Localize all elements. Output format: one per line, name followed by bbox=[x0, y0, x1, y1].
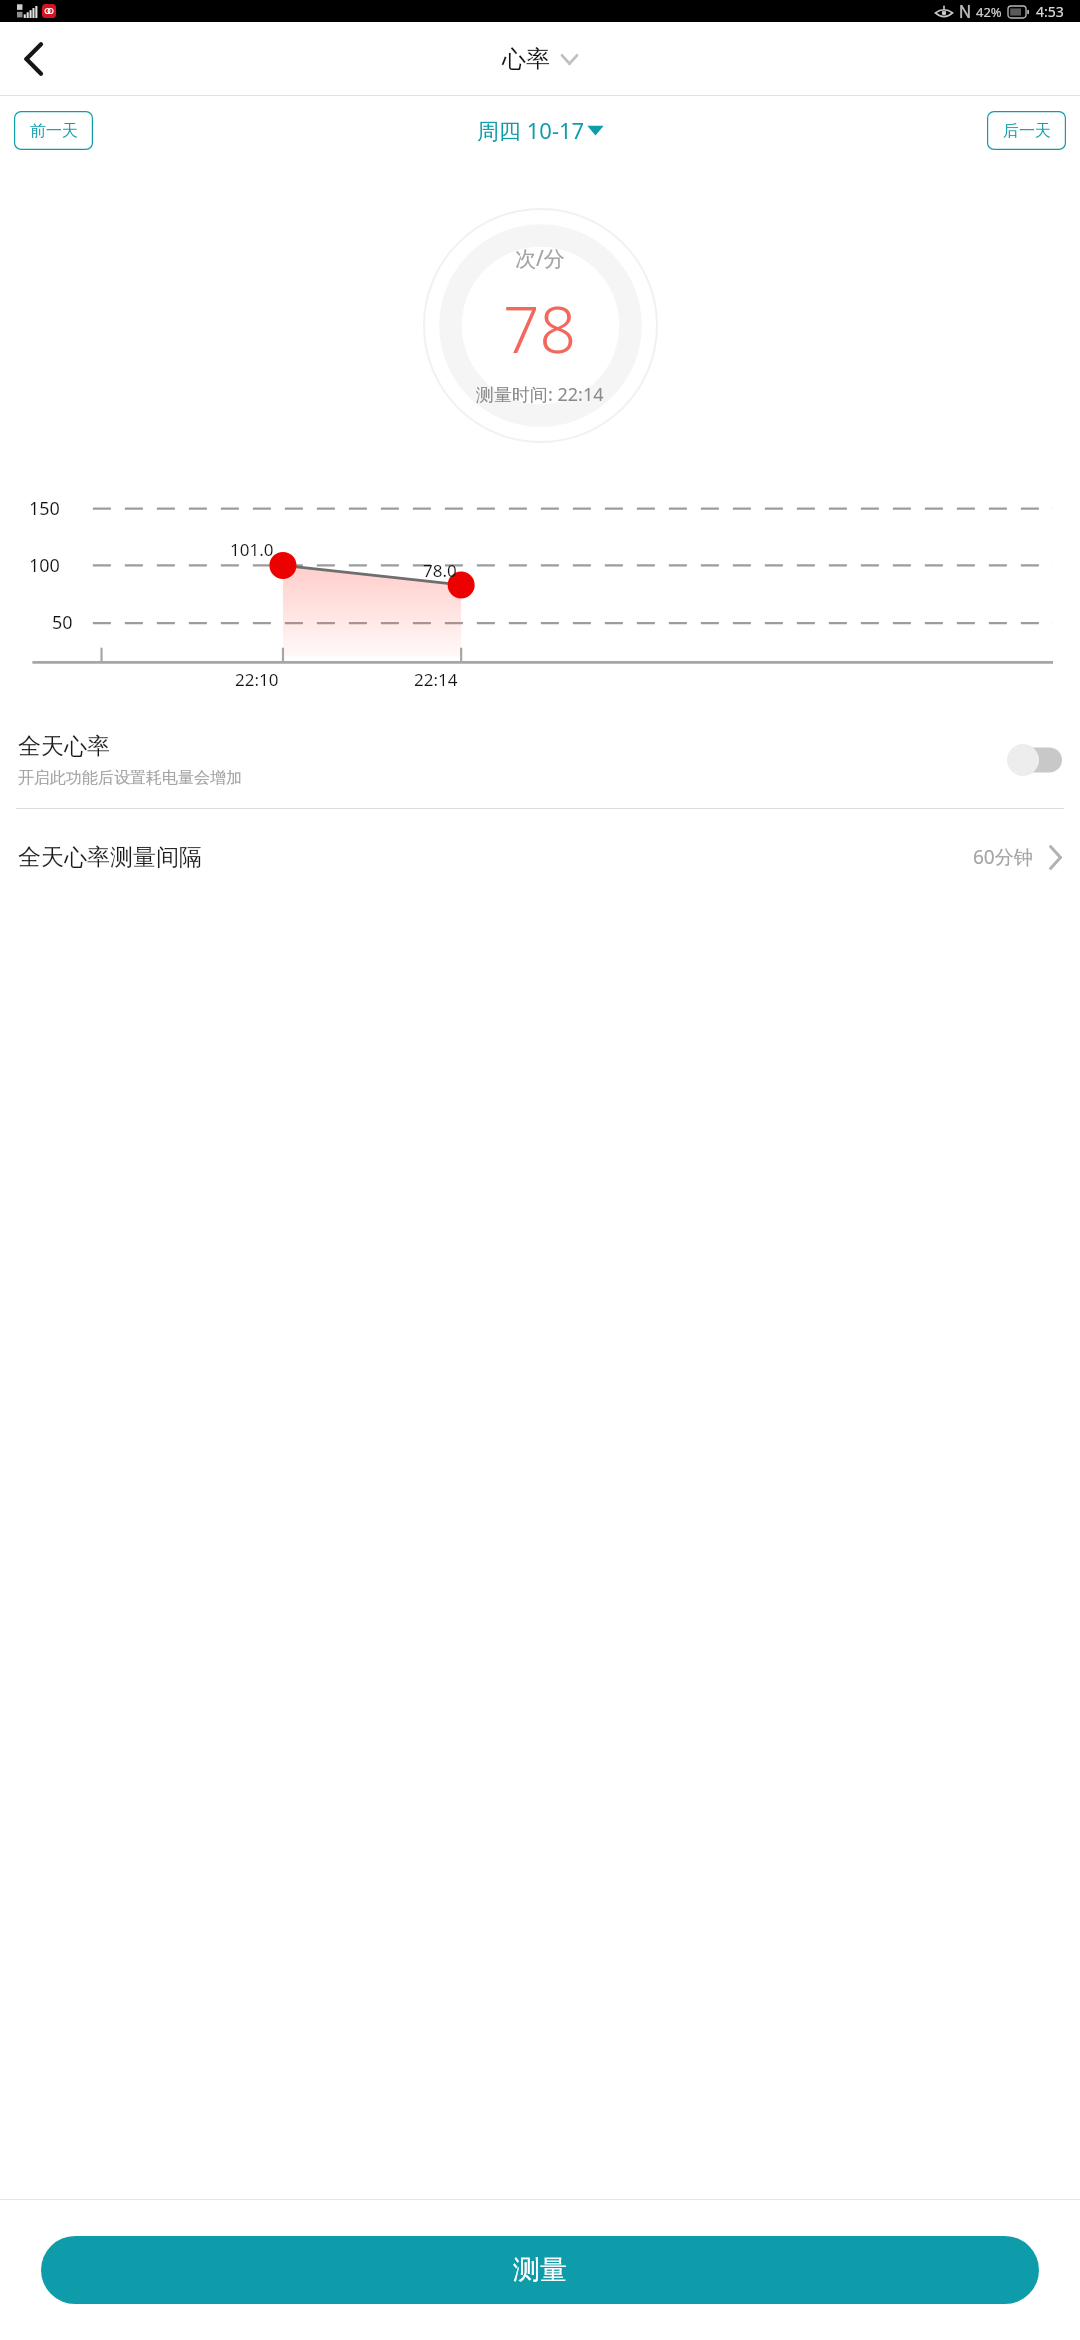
staticText: 22:10 bbox=[235, 668, 279, 691]
staticText: 60分钟 bbox=[973, 844, 1033, 870]
button[interactable]: 周四 10-17 bbox=[477, 115, 604, 145]
button[interactable]: 全天心率测量间隔 bbox=[0, 809, 1080, 905]
staticText: 心率 bbox=[502, 44, 550, 74]
staticText: 全天心率 bbox=[18, 732, 110, 761]
button[interactable]: 前一天 bbox=[14, 111, 93, 150]
staticText: 测量 bbox=[513, 2253, 567, 2287]
staticText: 后一天 bbox=[1003, 121, 1051, 141]
button[interactable]: 后一天 bbox=[987, 111, 1066, 150]
staticText: 次/分 bbox=[515, 244, 565, 273]
staticText: 100 bbox=[29, 553, 60, 578]
staticText: 4:53 bbox=[1036, 2, 1064, 21]
staticText: 测量时间: 22:14 bbox=[476, 382, 604, 407]
staticText: 78 bbox=[503, 285, 577, 372]
staticText: 22:14 bbox=[414, 668, 458, 691]
button[interactable]: Back bbox=[6, 31, 62, 87]
staticText: 周四 10-17 bbox=[477, 115, 585, 145]
staticText: 78.0 bbox=[423, 559, 457, 582]
staticText: 101.0 bbox=[230, 538, 274, 561]
staticText: 前一天 bbox=[30, 121, 78, 141]
staticText: 150 bbox=[29, 496, 60, 521]
staticText: 42% bbox=[976, 3, 1002, 21]
staticText: 开启此功能后设置耗电量会增加 bbox=[18, 768, 242, 788]
staticText: 全天心率测量间隔 bbox=[18, 843, 973, 872]
staticText: 50 bbox=[52, 610, 73, 635]
button[interactable]: 心率 bbox=[502, 44, 578, 74]
button[interactable]: 全天心率 bbox=[0, 712, 1080, 808]
button[interactable]: 测量 bbox=[41, 2236, 1039, 2304]
button[interactable]: All day heart rate toggle, off bbox=[1007, 744, 1062, 776]
